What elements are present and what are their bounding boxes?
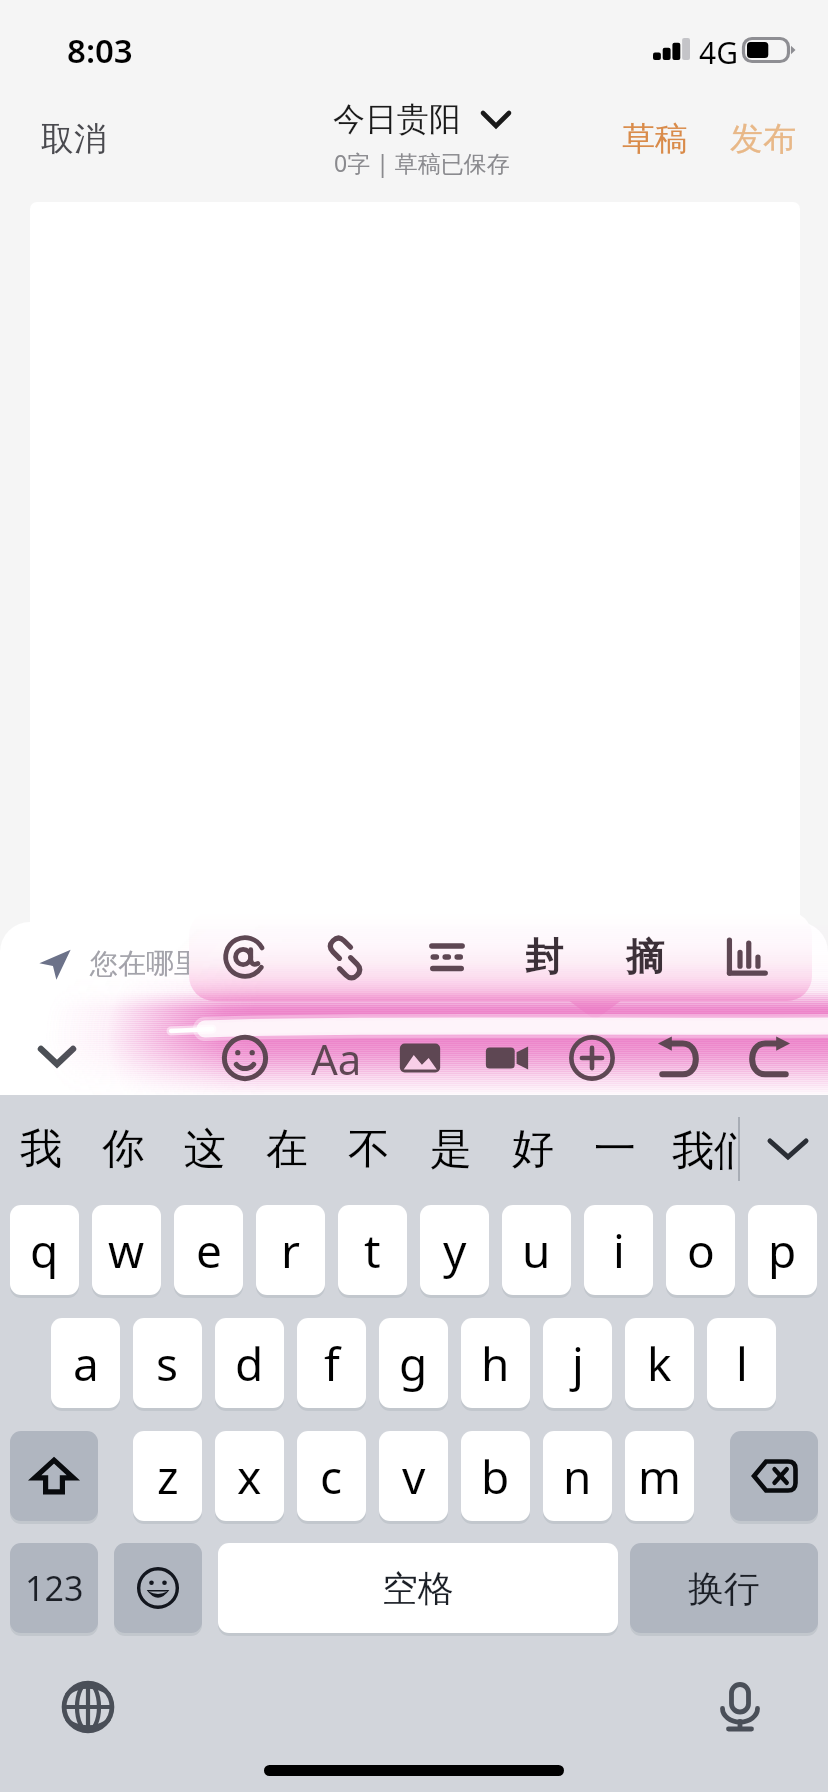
button[interactable]: i (584, 1205, 653, 1295)
staticText: 0字 | 草稿已保存 (334, 147, 510, 178)
staticText: 今日贵阳 (333, 99, 461, 139)
button[interactable]: Hide keyboard (25, 1024, 89, 1088)
button[interactable]: z (133, 1431, 202, 1521)
button[interactable]: Divider (413, 923, 481, 991)
button[interactable]: Chart (712, 923, 780, 991)
staticText: x (237, 1445, 262, 1508)
staticText: u (522, 1219, 551, 1282)
button[interactable]: 你 (82, 1095, 164, 1203)
button[interactable]: s (133, 1318, 202, 1408)
button[interactable]: 换行 (630, 1543, 818, 1633)
button[interactable]: y (420, 1205, 489, 1295)
button[interactable]: Undo (646, 1024, 714, 1092)
staticText: 发布 (730, 118, 796, 160)
button[interactable]: Switch keyboard language (56, 1675, 120, 1739)
button[interactable]: c (297, 1431, 366, 1521)
button[interactable]: Backspace (730, 1431, 818, 1521)
staticText: 我们 (672, 1125, 738, 1178)
button[interactable]: 我们 (656, 1095, 738, 1203)
button[interactable]: a (51, 1318, 120, 1408)
button[interactable]: 您在哪里 (34, 940, 206, 987)
button[interactable]: u (502, 1205, 571, 1295)
button[interactable]: l (707, 1318, 776, 1408)
staticText: n (563, 1445, 592, 1508)
staticText: 我 (20, 1123, 62, 1176)
staticText: a (73, 1332, 99, 1395)
button[interactable]: Mention (211, 923, 279, 991)
button[interactable]: n (543, 1431, 612, 1521)
button[interactable]: Emoji keyboard (114, 1543, 202, 1633)
staticText: c (320, 1445, 343, 1508)
staticText: 您在哪里 (90, 946, 202, 981)
button[interactable]: 取消 (35, 108, 113, 170)
staticText: Aa (311, 1030, 362, 1087)
button[interactable]: o (666, 1205, 735, 1295)
staticText: 这 (184, 1123, 226, 1176)
staticText: h (481, 1332, 510, 1395)
staticText: 空格 (382, 1566, 454, 1611)
button[interactable]: j (543, 1318, 612, 1408)
button[interactable]: e (174, 1205, 243, 1295)
button[interactable]: r (256, 1205, 325, 1295)
staticText: 摘 (626, 933, 664, 981)
button[interactable]: 不 (328, 1095, 410, 1203)
button[interactable]: k (625, 1318, 694, 1408)
button[interactable]: Video (473, 1024, 541, 1092)
staticText: 一 (594, 1123, 636, 1176)
button[interactable]: p (748, 1205, 817, 1295)
button[interactable]: 今日贵阳 (333, 99, 511, 139)
button[interactable]: v (379, 1431, 448, 1521)
staticText: 是 (430, 1123, 472, 1176)
staticText: 换行 (688, 1566, 760, 1611)
button[interactable]: Add (558, 1024, 626, 1092)
button[interactable]: Image (386, 1024, 454, 1092)
staticText: 封 (525, 933, 563, 981)
button[interactable]: 一 (574, 1095, 656, 1203)
button[interactable]: Shift (10, 1431, 98, 1521)
button[interactable]: 123 (10, 1543, 98, 1633)
button[interactable]: d (215, 1318, 284, 1408)
staticText: w (108, 1219, 145, 1282)
button[interactable]: 草稿 (612, 108, 698, 170)
staticText: b (481, 1445, 510, 1508)
button[interactable]: 这 (164, 1095, 246, 1203)
button[interactable]: More suggestions (748, 1095, 828, 1203)
staticText: l (736, 1332, 748, 1395)
button[interactable]: Voice input (708, 1675, 772, 1739)
staticText: z (157, 1445, 179, 1508)
button[interactable]: x (215, 1431, 284, 1521)
button[interactable]: Aa (302, 1024, 370, 1092)
staticText: 在 (266, 1123, 308, 1176)
button[interactable]: q (10, 1205, 79, 1295)
staticText: 你 (102, 1123, 144, 1176)
staticText: 草稿 (622, 118, 688, 160)
button[interactable]: 是 (410, 1095, 492, 1203)
staticText: 不 (348, 1123, 390, 1176)
button[interactable]: 空格 (218, 1543, 618, 1633)
staticText: o (687, 1219, 715, 1282)
staticText: q (30, 1219, 59, 1282)
staticText: e (196, 1219, 222, 1282)
button[interactable]: 在 (246, 1095, 328, 1203)
button[interactable]: 摘 (611, 923, 679, 991)
button[interactable]: m (625, 1431, 694, 1521)
button[interactable]: h (461, 1318, 530, 1408)
button[interactable]: f (297, 1318, 366, 1408)
button[interactable]: g (379, 1318, 448, 1408)
button[interactable]: t (338, 1205, 407, 1295)
button[interactable]: Redo (734, 1024, 802, 1092)
button[interactable]: 我 (0, 1095, 82, 1203)
button[interactable]: Emoji (211, 1024, 279, 1092)
button[interactable]: Link (312, 923, 380, 991)
staticText: g (399, 1332, 428, 1395)
button[interactable]: 发布 (720, 108, 806, 170)
button[interactable]: b (461, 1431, 530, 1521)
staticText: f (324, 1332, 340, 1395)
staticText: 4G (699, 32, 738, 73)
staticText: i (613, 1219, 625, 1282)
button[interactable]: w (92, 1205, 161, 1295)
button[interactable]: 封 (510, 923, 578, 991)
staticText: 取消 (41, 118, 107, 160)
staticText: d (235, 1332, 264, 1395)
button[interactable]: 好 (492, 1095, 574, 1203)
